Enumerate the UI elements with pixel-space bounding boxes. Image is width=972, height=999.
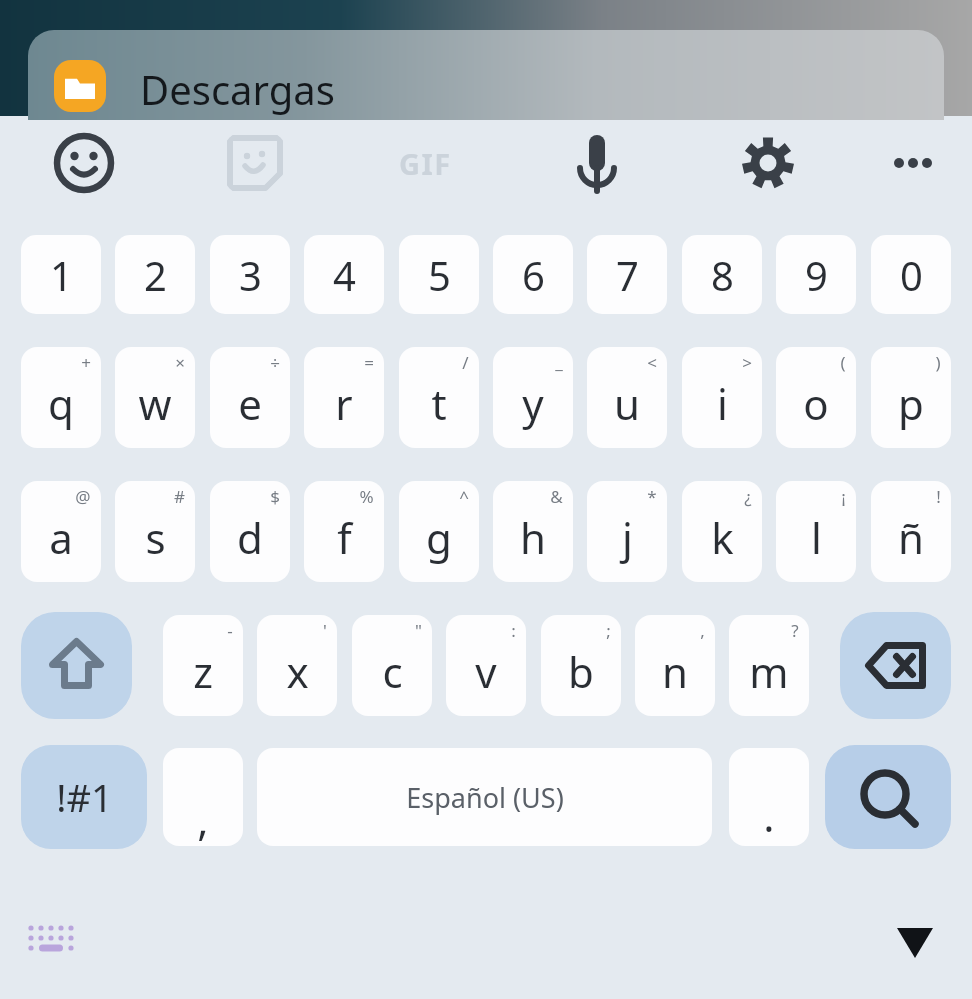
button[interactable]: p: [871, 347, 951, 448]
button[interactable]: [28, 30, 944, 120]
staticText: z: [193, 643, 213, 700]
button[interactable]: Backspace: [840, 612, 951, 719]
button[interactable]: a: [21, 481, 101, 582]
staticText: GIF: [399, 144, 452, 183]
button[interactable]: r: [304, 347, 384, 448]
button[interactable]: Stickers: [219, 127, 291, 199]
button[interactable]: Voice input: [561, 127, 633, 199]
button[interactable]: u: [587, 347, 667, 448]
button[interactable]: Emoji: [48, 127, 120, 199]
staticText: h: [520, 509, 546, 566]
button[interactable]: i: [682, 347, 762, 448]
button[interactable]: ,: [163, 748, 243, 846]
button[interactable]: 3: [210, 235, 290, 314]
staticText: /: [462, 351, 469, 374]
button[interactable]: m: [729, 615, 809, 716]
staticText: 1: [50, 248, 73, 302]
staticText: f: [337, 509, 352, 566]
staticText: m: [749, 643, 789, 700]
staticText: *: [647, 485, 657, 508]
button[interactable]: v: [446, 615, 526, 716]
button[interactable]: Hide keyboard: [886, 918, 944, 968]
button[interactable]: 6: [493, 235, 573, 314]
button[interactable]: .: [729, 748, 809, 846]
button[interactable]: z: [163, 615, 243, 716]
staticText: ×: [175, 351, 185, 374]
staticText: +: [81, 351, 91, 374]
staticText: <: [647, 351, 657, 374]
staticText: -: [227, 619, 233, 642]
button[interactable]: x: [257, 615, 337, 716]
button[interactable]: 8: [682, 235, 762, 314]
staticText: p: [898, 375, 924, 432]
staticText: b: [568, 643, 594, 700]
staticText: k: [711, 509, 734, 566]
staticText: 6: [522, 248, 545, 302]
button[interactable]: Search: [825, 745, 951, 849]
button[interactable]: Settings: [732, 127, 804, 199]
button[interactable]: ñ: [871, 481, 951, 582]
staticText: ¡: [841, 485, 846, 508]
button[interactable]: t: [399, 347, 479, 448]
staticText: @: [75, 485, 91, 508]
staticText: ÷: [270, 351, 280, 374]
staticText: $: [270, 485, 280, 508]
staticText: u: [614, 375, 640, 432]
button[interactable]: Change keyboard: [26, 920, 82, 964]
button[interactable]: y: [493, 347, 573, 448]
button[interactable]: 2: [115, 235, 195, 314]
button[interactable]: l: [776, 481, 856, 582]
button[interactable]: 5: [399, 235, 479, 314]
staticText: ,: [700, 619, 705, 642]
button[interactable]: b: [541, 615, 621, 716]
staticText: c: [382, 643, 403, 700]
button[interactable]: 1: [21, 235, 101, 314]
staticText: ^: [459, 485, 469, 508]
staticText: Descargas: [140, 62, 335, 116]
button[interactable]: q: [21, 347, 101, 448]
button[interactable]: k: [682, 481, 762, 582]
staticText: e: [238, 375, 262, 432]
staticText: 3: [239, 248, 262, 302]
button[interactable]: 0: [871, 235, 951, 314]
button[interactable]: c: [352, 615, 432, 716]
button[interactable]: 4: [304, 235, 384, 314]
button[interactable]: w: [115, 347, 195, 448]
staticText: a: [49, 509, 73, 566]
staticText: t: [431, 375, 447, 432]
staticText: ñ: [898, 509, 924, 566]
staticText: r: [335, 375, 353, 432]
staticText: 8: [711, 248, 734, 302]
button[interactable]: Español (US): [257, 748, 712, 846]
button[interactable]: Shift: [21, 612, 132, 719]
staticText: :: [511, 619, 516, 642]
button[interactable]: Descargas folder: [54, 60, 106, 112]
button[interactable]: GIF: [380, 133, 470, 193]
staticText: v: [475, 643, 497, 700]
staticText: !: [936, 485, 941, 508]
button[interactable]: o: [776, 347, 856, 448]
staticText: 4: [333, 248, 356, 302]
button[interactable]: n: [635, 615, 715, 716]
button[interactable]: d: [210, 481, 290, 582]
button[interactable]: e: [210, 347, 290, 448]
staticText: ): [935, 351, 941, 374]
staticText: (: [840, 351, 846, 374]
staticText: &: [550, 485, 563, 508]
button[interactable]: h: [493, 481, 573, 582]
button[interactable]: 9: [776, 235, 856, 314]
staticText: g: [426, 509, 452, 566]
button[interactable]: g: [399, 481, 479, 582]
staticText: =: [364, 351, 374, 374]
staticText: >: [742, 351, 752, 374]
staticText: l: [811, 509, 822, 566]
button[interactable]: 7: [587, 235, 667, 314]
button[interactable]: f: [304, 481, 384, 582]
staticText: ,: [197, 791, 209, 846]
button[interactable]: More options: [877, 127, 949, 199]
button[interactable]: j: [587, 481, 667, 582]
staticText: #: [174, 485, 185, 508]
button[interactable]: !#1: [21, 745, 147, 849]
staticText: 7: [616, 248, 639, 302]
button[interactable]: s: [115, 481, 195, 582]
